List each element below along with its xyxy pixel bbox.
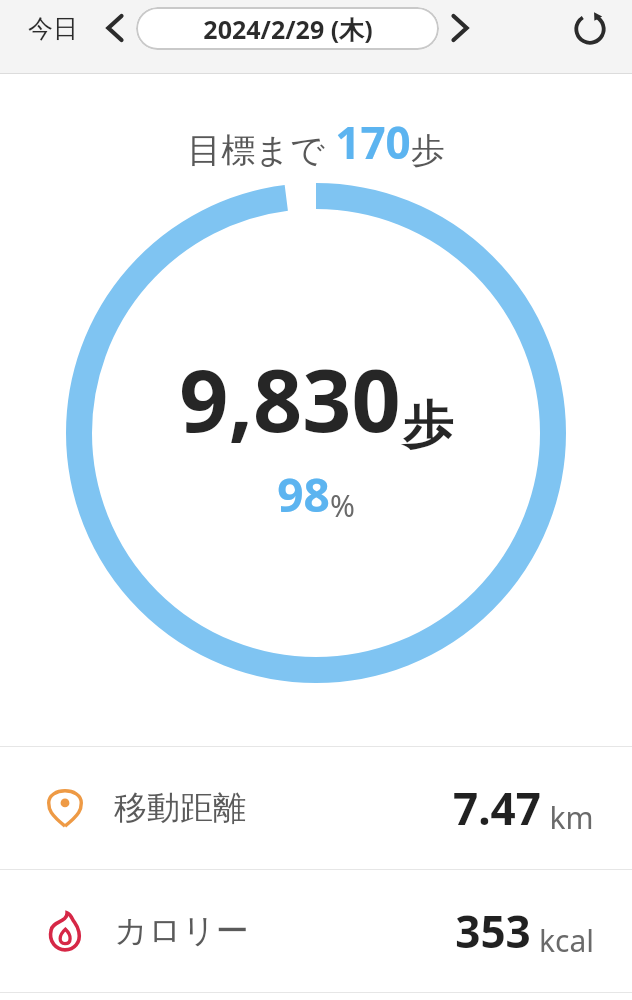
staticText: 2024/2/29 (木) <box>203 12 373 46</box>
button[interactable]: 今日 <box>0 5 92 52</box>
staticText: 今日 <box>28 13 78 44</box>
staticText: kcal <box>539 920 594 961</box>
button[interactable]: カロリー <box>0 870 632 992</box>
button[interactable]: 2024/2/29 (木) <box>136 7 439 50</box>
button[interactable]: Next day <box>439 6 483 50</box>
staticText: 353 <box>455 901 531 961</box>
staticText: 7.47 <box>453 778 541 838</box>
staticText: カロリー <box>114 910 249 952</box>
staticText: km <box>549 797 594 838</box>
staticText: 移動距離 <box>114 787 246 829</box>
staticText: % <box>330 485 355 526</box>
staticText: 9,830 <box>179 340 401 457</box>
button[interactable]: 移動距離 <box>0 747 632 869</box>
staticText: 170 <box>335 112 411 172</box>
button[interactable]: Previous day <box>92 6 136 50</box>
staticText: 歩 <box>403 394 453 457</box>
button[interactable]: Refresh <box>562 0 618 56</box>
staticText: 目標まで <box>187 129 325 172</box>
staticText: 歩 <box>411 129 445 172</box>
staticText: 98 <box>277 463 330 526</box>
